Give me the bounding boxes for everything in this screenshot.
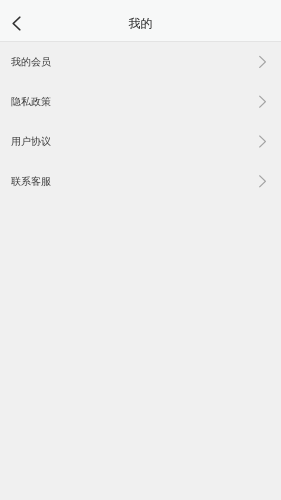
staticText: 隐私政策	[11, 95, 51, 108]
staticText: 联系客服	[11, 175, 51, 188]
button[interactable]: 隐私政策	[0, 82, 281, 122]
button[interactable]: Back	[0, 6, 33, 41]
button[interactable]: 用户协议	[0, 122, 281, 161]
staticText: 我的	[128, 16, 152, 31]
button[interactable]: 联系客服	[0, 161, 281, 201]
staticText: 我的会员	[11, 56, 51, 68]
staticText: 用户协议	[11, 135, 51, 148]
button[interactable]: 我的会员	[0, 42, 281, 82]
